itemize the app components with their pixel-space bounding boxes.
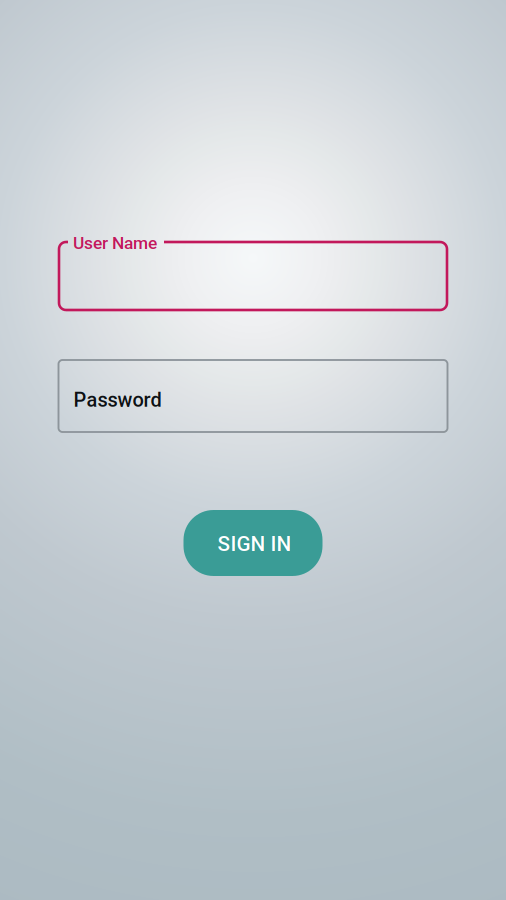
button[interactable]: SIGN IN [183, 510, 322, 576]
staticText: User Name [73, 233, 157, 253]
button[interactable]: Password [58, 360, 447, 432]
button[interactable]: User Name [59, 232, 447, 310]
staticText: SIGN IN [217, 532, 291, 556]
staticText: Password [73, 388, 161, 412]
